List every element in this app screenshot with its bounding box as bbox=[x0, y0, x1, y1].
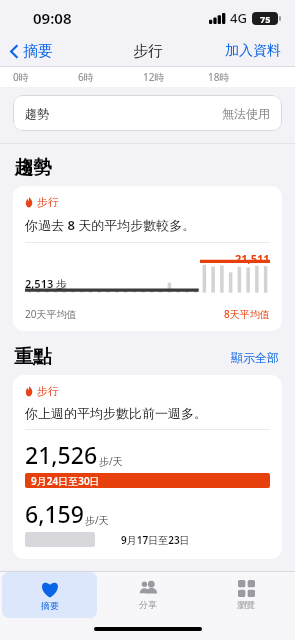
staticText: 步行 bbox=[37, 384, 59, 398]
button[interactable]: 步行 bbox=[13, 186, 282, 331]
staticText: 20天平均值 bbox=[25, 307, 77, 321]
staticText: 你上週的平均步數比前一週多。 bbox=[25, 405, 207, 421]
staticText: 摘要 bbox=[41, 600, 59, 611]
staticText: 12時 bbox=[143, 70, 165, 84]
staticText: 步/天 bbox=[85, 513, 109, 527]
staticText: 0時 bbox=[13, 70, 29, 84]
staticText: 重點 bbox=[14, 345, 52, 369]
staticText: 2,513 步 bbox=[25, 276, 68, 291]
button[interactable]: 趨勢 bbox=[13, 95, 282, 131]
staticText: 4G bbox=[230, 9, 247, 27]
staticText: 你過去 8 天的平均步數較多。 bbox=[25, 216, 196, 234]
staticText: 趨勢 bbox=[14, 156, 52, 180]
staticText: 無法使用 bbox=[222, 106, 270, 121]
button[interactable]: 加入資料 bbox=[223, 40, 283, 62]
staticText: 分享 bbox=[139, 599, 157, 610]
button[interactable]: 步行 bbox=[13, 375, 282, 559]
button[interactable]: 摘要 bbox=[2, 572, 97, 618]
button[interactable]: 顯示全部 bbox=[229, 348, 281, 367]
staticText: 09:08 bbox=[33, 8, 72, 28]
staticText: 9月17日至23日 bbox=[121, 533, 190, 547]
staticText: 21,526 bbox=[25, 439, 98, 470]
staticText: 9月24日至30日 bbox=[31, 474, 100, 488]
staticText: 6,159 bbox=[25, 498, 84, 529]
staticText: 75 bbox=[260, 13, 271, 25]
staticText: 瀏覽 bbox=[237, 599, 255, 610]
button[interactable]: 瀏覽 bbox=[199, 572, 293, 618]
staticText: 8天平均值 bbox=[224, 307, 270, 321]
button[interactable]: 摘要 bbox=[8, 39, 55, 64]
staticText: 6時 bbox=[78, 70, 94, 84]
staticText: 步/天 bbox=[99, 454, 123, 468]
staticText: 步行 bbox=[37, 195, 59, 209]
button[interactable]: 分享 bbox=[101, 572, 195, 618]
staticText: 18時 bbox=[208, 70, 230, 84]
staticText: 摘要 bbox=[23, 42, 53, 61]
staticText: 步行 bbox=[133, 42, 163, 61]
staticText: 趨勢 bbox=[25, 106, 49, 121]
staticText: 21,511 bbox=[235, 251, 270, 266]
